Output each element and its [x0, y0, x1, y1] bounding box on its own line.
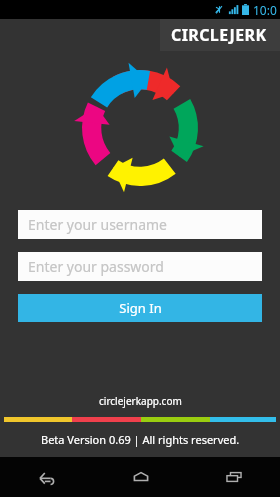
button[interactable]: Enter your username [18, 210, 262, 239]
staticText: CIRCLEJERK [171, 24, 267, 46]
staticText: Sign In [119, 299, 162, 317]
button[interactable]: circlejerkapp.com [0, 394, 280, 408]
staticText: Enter your password [28, 257, 164, 276]
staticText: circlejerkapp.com [99, 394, 182, 408]
button[interactable]: Enter your password [18, 252, 262, 281]
staticText: Enter your username [28, 215, 168, 234]
staticText: Beta Version 0.69 | All rights reserved. [41, 432, 240, 447]
button[interactable]: Back [0, 457, 94, 497]
button[interactable]: Home [94, 457, 187, 497]
staticText: 10:0 [253, 2, 277, 18]
button[interactable]: Sign In [18, 294, 262, 322]
button[interactable]: Recent apps [187, 457, 280, 497]
